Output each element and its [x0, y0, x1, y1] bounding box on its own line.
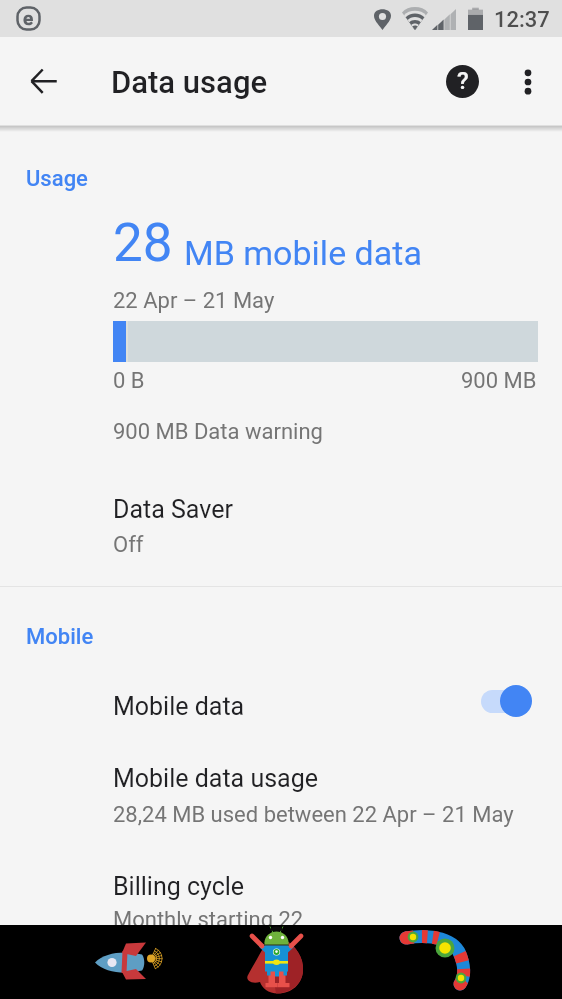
- staticText: 28: [113, 212, 173, 274]
- staticText: Off: [113, 532, 144, 558]
- button[interactable]: Back: [60, 925, 200, 999]
- staticText: 22 Apr – 21 May: [113, 288, 275, 314]
- staticText: Mobile: [26, 624, 94, 650]
- button[interactable]: Back: [19, 57, 68, 106]
- staticText: ?: [457, 67, 469, 95]
- button[interactable]: Mobile data: [0, 678, 562, 734]
- staticText: 12:37: [494, 7, 550, 33]
- button[interactable]: Home: [211, 925, 341, 999]
- staticText: 0 B: [113, 368, 145, 394]
- staticText: Data Saver: [113, 495, 233, 524]
- staticText: Billing cycle: [113, 872, 245, 901]
- button[interactable]: Data Saver: [0, 485, 562, 570]
- button[interactable]: More options: [503, 57, 552, 106]
- staticText: 28,24 MB used between 22 Apr – 21 May: [113, 802, 514, 828]
- staticText: Mobile data: [113, 692, 245, 721]
- staticText: e: [23, 7, 34, 29]
- staticText: Mobile data usage: [113, 764, 318, 793]
- staticText: Monthly starting 22: [113, 907, 304, 933]
- staticText: MB mobile data: [184, 233, 422, 273]
- staticText: Data usage: [111, 64, 268, 100]
- staticText: Usage: [26, 166, 88, 192]
- staticText: 900 MB: [461, 368, 537, 394]
- button[interactable]: Help: [438, 57, 487, 106]
- button[interactable]: Recents: [365, 925, 505, 999]
- staticText: 900 MB Data warning: [113, 419, 323, 445]
- button[interactable]: Mobile data usage: [0, 754, 562, 840]
- button[interactable]: Billing cycle: [0, 862, 562, 945]
